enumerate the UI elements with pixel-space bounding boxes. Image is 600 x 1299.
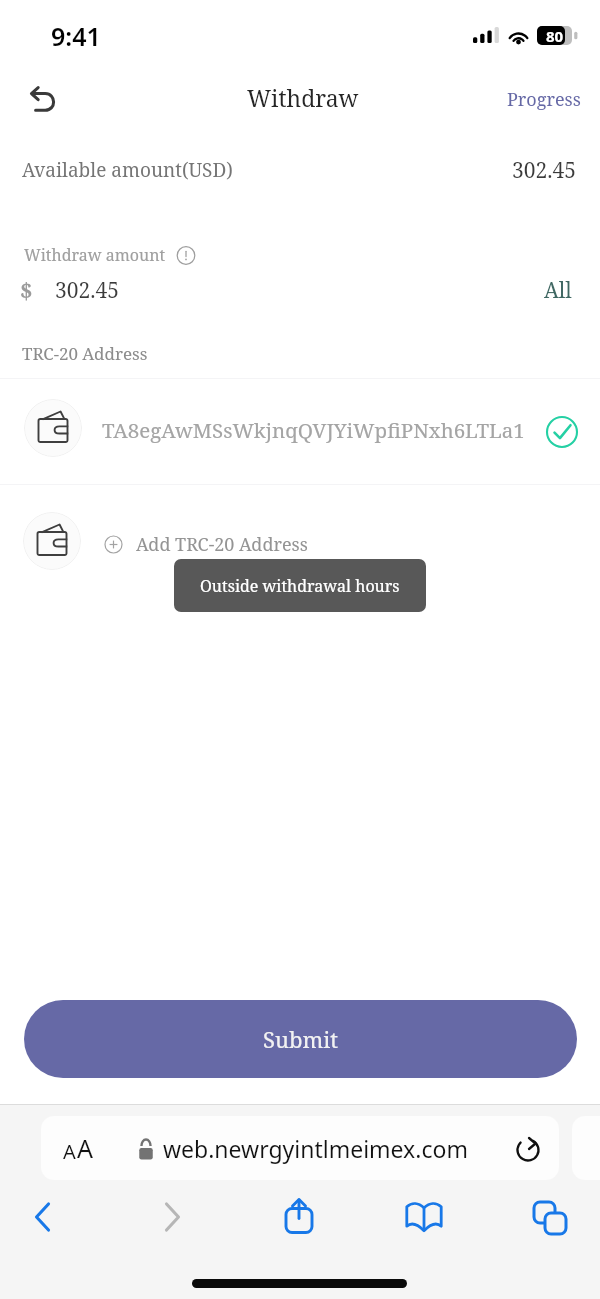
staticText: All <box>544 276 572 305</box>
button[interactable]: Share <box>269 1187 329 1247</box>
staticText: Add TRC-20 Address <box>136 532 308 557</box>
staticText: Progress <box>507 87 581 112</box>
button[interactable]: Back <box>14 72 70 128</box>
staticText: 80 <box>546 26 564 45</box>
staticText: Available amount(USD) <box>22 157 233 183</box>
staticText: Submit <box>263 1024 339 1054</box>
staticText: A <box>77 1131 93 1165</box>
button[interactable]: TA8egAwMSsWkjnqQVJYiWpfiPNxh6LTLa1 <box>0 379 600 484</box>
button[interactable]: Tabs <box>519 1187 579 1247</box>
button[interactable]: Bookmarks <box>394 1187 454 1247</box>
button[interactable]: Forward <box>143 1187 203 1247</box>
button[interactable]: A <box>41 1116 559 1180</box>
staticText: 302.45 <box>512 156 576 185</box>
staticText: 302.45 <box>55 276 119 305</box>
staticText: web.newrgyintlmeimex.com <box>163 1133 468 1164</box>
staticText: $ <box>20 275 33 305</box>
staticText: 9:41 <box>51 19 101 53</box>
staticText: A <box>63 1138 76 1165</box>
staticText: Outside withdrawal hours <box>200 575 400 597</box>
button[interactable]: Progress <box>497 77 591 122</box>
staticText: Withdraw <box>247 82 359 113</box>
button[interactable]: Back <box>12 1187 72 1247</box>
staticText: TA8egAwMSsWkjnqQVJYiWpfiPNxh6LTLa1 <box>102 416 525 444</box>
button[interactable]: All <box>533 268 600 313</box>
staticText: TRC-20 Address <box>22 342 148 365</box>
staticText: Withdraw amount <box>24 244 166 266</box>
button[interactable]: Add TRC-20 Address <box>0 485 600 589</box>
button[interactable]: Submit <box>24 1000 577 1078</box>
